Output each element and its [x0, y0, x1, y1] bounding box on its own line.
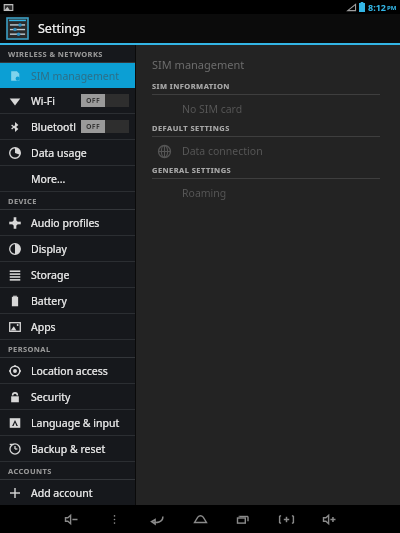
button[interactable]: Home: [188, 506, 212, 532]
staticText: Wi-Fi: [31, 94, 56, 108]
staticText: Storage: [31, 268, 70, 282]
staticText: DEVICE: [8, 196, 37, 206]
button[interactable]: Battery: [0, 288, 135, 313]
button[interactable]: Volume up: [317, 506, 341, 532]
staticText: 8:12: [368, 1, 386, 13]
staticText: Audio profiles: [31, 216, 100, 230]
staticText: PM: [387, 4, 397, 12]
staticText: Data connection: [182, 144, 263, 158]
staticText: OFF: [86, 122, 101, 132]
button[interactable]: SIM management: [0, 63, 135, 88]
button[interactable]: SIM management: [136, 53, 400, 75]
button[interactable]: More...: [0, 166, 135, 191]
staticText: OFF: [86, 96, 101, 106]
button[interactable]: Bluetootl: [0, 114, 135, 139]
button[interactable]: Data connection: [136, 137, 400, 165]
button[interactable]: Settings: [0, 14, 400, 43]
button[interactable]: Screenshot: [274, 506, 298, 532]
button[interactable]: Volume down: [59, 506, 83, 532]
button[interactable]: Audio profiles: [0, 210, 135, 235]
staticText: SIM management: [31, 69, 120, 83]
staticText: GENERAL SETTINGS: [152, 165, 232, 175]
button[interactable]: Storage: [0, 262, 135, 287]
staticText: DEFAULT SETTINGS: [152, 123, 230, 133]
staticText: Backup & reset: [31, 442, 106, 456]
staticText: Display: [31, 242, 67, 256]
staticText: Settings: [38, 20, 86, 37]
staticText: More...: [31, 172, 66, 186]
button[interactable]: Data usage: [0, 140, 135, 165]
staticText: Roaming: [182, 186, 227, 200]
staticText: PERSONAL: [8, 344, 51, 354]
staticText: Data usage: [31, 146, 87, 160]
button[interactable]: Menu: [102, 506, 126, 532]
button[interactable]: Back: [145, 506, 169, 532]
staticText: Language & input: [31, 416, 120, 430]
staticText: Apps: [31, 320, 56, 334]
button[interactable]: Security: [0, 384, 135, 409]
button[interactable]: Apps: [0, 314, 135, 339]
button[interactable]: Add account: [0, 480, 135, 505]
staticText: No SIM card: [182, 102, 243, 116]
button[interactable]: Backup & reset: [0, 436, 135, 461]
staticText: SIM INFORMATION: [152, 81, 230, 91]
button[interactable]: Recent apps: [231, 506, 255, 532]
button[interactable]: No SIM card: [136, 95, 400, 123]
staticText: Location access: [31, 364, 108, 378]
button[interactable]: Language & input: [0, 410, 135, 435]
staticText: Security: [31, 390, 71, 404]
staticText: SIM management: [152, 57, 245, 72]
staticText: Add account: [31, 486, 93, 500]
button[interactable]: Display: [0, 236, 135, 261]
button[interactable]: Location access: [0, 358, 135, 383]
staticText: WIRELESS & NETWORKS: [8, 49, 103, 59]
staticText: Bluetootl: [31, 120, 76, 134]
staticText: Battery: [31, 294, 67, 308]
button[interactable]: Wi-Fi: [0, 88, 135, 113]
button[interactable]: Roaming: [136, 179, 400, 207]
staticText: ACCOUNTS: [8, 466, 52, 476]
